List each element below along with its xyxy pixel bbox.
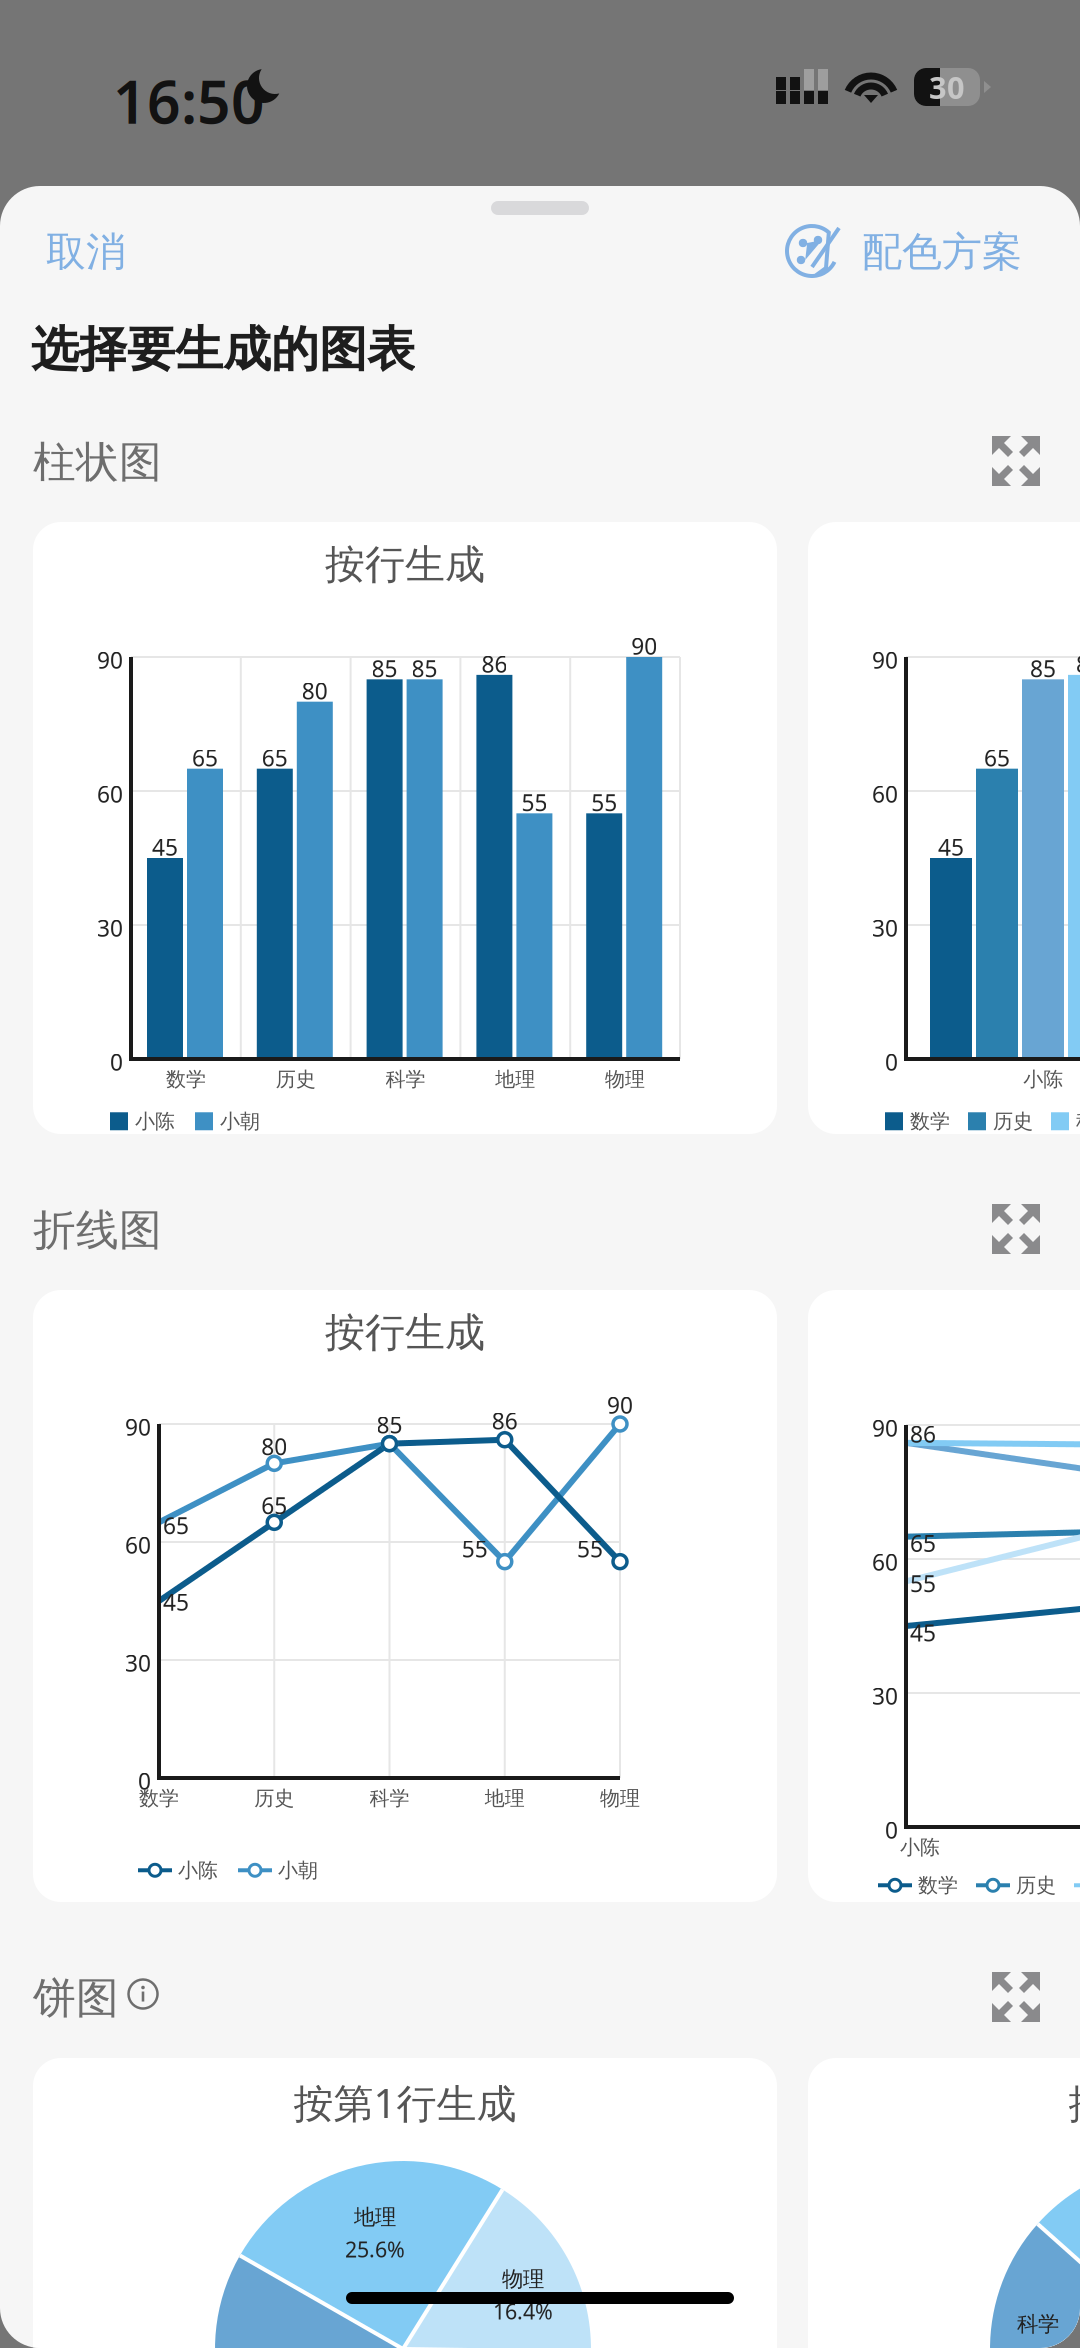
staticText: 85 — [412, 653, 438, 683]
staticText: 数学 — [910, 1109, 950, 1134]
button[interactable]: 按列生成 — [808, 1290, 1080, 1902]
staticText: 25.6% — [345, 2235, 405, 2263]
staticText: 历史 — [993, 1109, 1033, 1134]
staticText: 柱状图 — [33, 436, 162, 488]
staticText: 55 — [577, 1534, 603, 1564]
staticText: 0 — [138, 1766, 151, 1796]
staticText: 按行生成 — [325, 1308, 485, 1357]
staticText: 16.4% — [493, 2297, 553, 2325]
staticText: 86 — [1076, 649, 1080, 679]
staticText: 按第2行生成 — [1068, 2076, 1080, 2129]
staticText: 30 — [872, 913, 898, 943]
staticText: 85 — [376, 1410, 402, 1440]
staticText: 65 — [910, 1528, 936, 1558]
staticText: 数学 — [166, 1067, 206, 1092]
staticText: 65 — [261, 1490, 287, 1520]
staticText: 历史 — [254, 1786, 294, 1811]
button[interactable]: 配色方案 — [784, 214, 1022, 290]
staticText: 物理 — [600, 1786, 640, 1811]
staticText: 90 — [872, 645, 898, 675]
staticText: 90 — [97, 645, 123, 675]
button[interactable]: 全屏 — [992, 1204, 1040, 1254]
staticText: 86 — [492, 1406, 518, 1436]
staticText: 物理 — [605, 1067, 645, 1092]
staticText: 科学 — [1017, 2311, 1059, 2337]
staticText: 按第1行生成 — [293, 2076, 516, 2129]
staticText: 小陈 — [135, 1109, 175, 1134]
staticText: 60 — [125, 1530, 151, 1560]
staticText: 物理 — [502, 2266, 544, 2292]
staticText: 60 — [872, 779, 898, 809]
staticText: 小陈 — [1023, 1067, 1063, 1092]
staticText: 45 — [152, 832, 178, 862]
staticText: 0 — [885, 1815, 898, 1845]
button[interactable]: 全屏 — [992, 436, 1040, 486]
staticText: 历史 — [276, 1067, 316, 1092]
staticText: 选择要生成的图表 — [31, 320, 415, 379]
staticText: 45 — [163, 1587, 189, 1617]
button[interactable]: 取消 — [46, 214, 166, 290]
staticText: 30 — [929, 67, 965, 107]
staticText: 55 — [462, 1534, 488, 1564]
staticText: 55 — [521, 787, 547, 817]
button[interactable]: 按行生成 — [33, 1290, 777, 1902]
staticText: 科学 — [1076, 1109, 1080, 1134]
staticText: 16:50 — [113, 62, 265, 140]
staticText: 取消 — [46, 227, 126, 276]
staticText: 按行生成 — [325, 540, 485, 589]
staticText: 65 — [163, 1510, 189, 1540]
staticText: 85 — [372, 653, 398, 683]
staticText: 90 — [631, 631, 657, 661]
staticText: 数学 — [918, 1873, 958, 1898]
button[interactable]: 全屏 — [992, 1972, 1040, 2022]
staticText: 地理 — [354, 2204, 396, 2230]
staticText: 90 — [125, 1412, 151, 1442]
staticText: 饼图 — [33, 1972, 119, 2024]
staticText: 80 — [261, 1431, 287, 1461]
staticText: 86 — [481, 649, 507, 679]
button[interactable]: 按第1行生成 — [33, 2058, 777, 2348]
button[interactable]: 按行生成 — [33, 522, 777, 1134]
staticText: 科学 — [385, 1067, 425, 1092]
staticText: 60 — [97, 779, 123, 809]
staticText: 地理 — [485, 1786, 525, 1811]
staticText: 55 — [910, 1568, 936, 1598]
staticText: 折线图 — [33, 1204, 162, 1256]
staticText: 45 — [910, 1617, 936, 1648]
staticText: 85 — [1030, 653, 1056, 683]
staticText: 55 — [591, 787, 617, 817]
staticText: 历史 — [1016, 1873, 1056, 1898]
staticText: 小陈 — [178, 1858, 218, 1883]
staticText: 小陈 — [900, 1835, 940, 1860]
staticText: 小朝 — [220, 1109, 260, 1134]
staticText: 地理 — [495, 1067, 535, 1092]
button[interactable]: 按第2行生成 — [808, 2058, 1080, 2348]
staticText: 86 — [910, 1419, 936, 1449]
staticText: 0 — [885, 1047, 898, 1077]
staticText: 配色方案 — [862, 227, 1022, 276]
staticText: 65 — [262, 743, 288, 773]
staticText: 30 — [872, 1681, 898, 1711]
staticText: 65 — [984, 743, 1010, 773]
staticText: 80 — [302, 676, 328, 706]
staticText: 45 — [938, 832, 964, 862]
staticText: 90 — [872, 1413, 898, 1443]
staticText: 60 — [872, 1547, 898, 1577]
staticText: 30 — [97, 913, 123, 943]
staticText: 65 — [192, 743, 218, 773]
staticText: 科学 — [369, 1786, 409, 1811]
staticText: 数学 — [139, 1786, 179, 1811]
staticText: 90 — [607, 1390, 633, 1420]
button[interactable]: 按列生成 — [808, 522, 1080, 1134]
staticText: 0 — [110, 1047, 123, 1077]
staticText: 小朝 — [278, 1858, 318, 1883]
staticText: 30 — [125, 1648, 151, 1678]
